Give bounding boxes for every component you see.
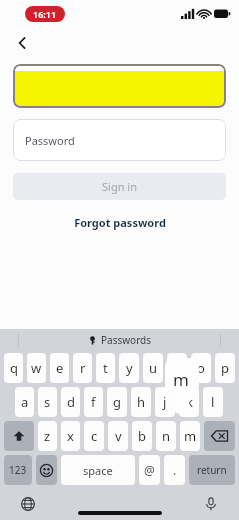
staticText: q bbox=[10, 359, 18, 377]
staticText: x bbox=[67, 427, 74, 445]
staticText: a bbox=[21, 393, 29, 411]
button[interactable]: . bbox=[164, 455, 185, 485]
staticText: m bbox=[184, 427, 197, 445]
button[interactable]: u bbox=[143, 353, 163, 383]
staticText: space bbox=[83, 463, 113, 478]
staticText: v bbox=[115, 427, 122, 445]
button[interactable]: z bbox=[38, 421, 57, 451]
button[interactable]: g bbox=[107, 387, 127, 417]
button[interactable]: j bbox=[155, 387, 175, 417]
button[interactable]: o bbox=[191, 353, 211, 383]
staticText: o bbox=[197, 359, 205, 377]
button[interactable]: r bbox=[73, 353, 92, 383]
staticText: h bbox=[137, 393, 146, 411]
button[interactable]: q bbox=[4, 353, 23, 383]
button[interactable]: s bbox=[38, 387, 57, 417]
button[interactable]: l bbox=[203, 387, 223, 417]
button[interactable]: f bbox=[84, 387, 103, 417]
button[interactable]: Shift bbox=[4, 421, 34, 451]
button[interactable]: Back bbox=[8, 28, 38, 58]
staticText: . bbox=[173, 462, 177, 478]
staticText: t bbox=[103, 359, 108, 377]
button[interactable]: Voice input bbox=[201, 494, 221, 514]
staticText: n bbox=[162, 427, 171, 445]
staticText: j bbox=[163, 393, 167, 411]
button[interactable] bbox=[13, 64, 226, 108]
staticText: 123 bbox=[9, 463, 27, 477]
button[interactable]: v bbox=[108, 421, 128, 451]
staticText: p bbox=[221, 359, 229, 377]
button[interactable]: k bbox=[179, 387, 199, 417]
staticText: Passwords bbox=[101, 333, 152, 347]
staticText: g bbox=[113, 393, 121, 411]
staticText: b bbox=[138, 427, 146, 445]
staticText: Sign in bbox=[102, 179, 137, 194]
button[interactable]: e bbox=[50, 353, 69, 383]
button[interactable]: n bbox=[156, 421, 176, 451]
staticText: Password bbox=[25, 133, 75, 148]
staticText: e bbox=[56, 359, 64, 377]
button[interactable]: c bbox=[84, 421, 104, 451]
staticText: k bbox=[186, 393, 193, 411]
staticText: d bbox=[67, 393, 75, 411]
staticText: m bbox=[173, 368, 189, 391]
button[interactable]: d bbox=[61, 387, 80, 417]
staticText: return bbox=[197, 463, 227, 477]
button[interactable]: Password bbox=[13, 119, 226, 161]
button[interactable]: w bbox=[27, 353, 46, 383]
staticText: w bbox=[31, 359, 42, 377]
staticText: c bbox=[91, 427, 98, 445]
button[interactable]: x bbox=[61, 421, 80, 451]
staticText: r bbox=[80, 359, 86, 377]
staticText: l bbox=[211, 393, 215, 411]
button[interactable]: b bbox=[132, 421, 152, 451]
staticText: y bbox=[126, 359, 133, 377]
staticText: z bbox=[44, 427, 51, 445]
button[interactable]: return bbox=[189, 455, 235, 485]
staticText: 16:11 bbox=[33, 8, 57, 20]
button[interactable]: h bbox=[131, 387, 151, 417]
button[interactable]: i bbox=[167, 353, 187, 383]
staticText: @ bbox=[144, 462, 155, 478]
staticText: u bbox=[149, 359, 158, 377]
staticText: f bbox=[91, 393, 96, 411]
button[interactable]: Forgot password bbox=[74, 215, 166, 230]
button[interactable]: Sign in bbox=[13, 173, 226, 200]
button[interactable]: Emoji bbox=[36, 455, 57, 485]
staticText: s bbox=[44, 393, 51, 411]
button[interactable]: Backspace bbox=[204, 421, 235, 451]
button[interactable]: t bbox=[96, 353, 115, 383]
button[interactable]: m bbox=[180, 421, 200, 451]
button[interactable]: 123 bbox=[4, 455, 32, 485]
button[interactable]: space bbox=[61, 455, 135, 485]
button[interactable]: @ bbox=[139, 455, 160, 485]
button[interactable]: Change keyboard bbox=[18, 494, 38, 514]
button[interactable]: a bbox=[15, 387, 34, 417]
button[interactable]: y bbox=[119, 353, 139, 383]
button[interactable]: p bbox=[215, 353, 235, 383]
